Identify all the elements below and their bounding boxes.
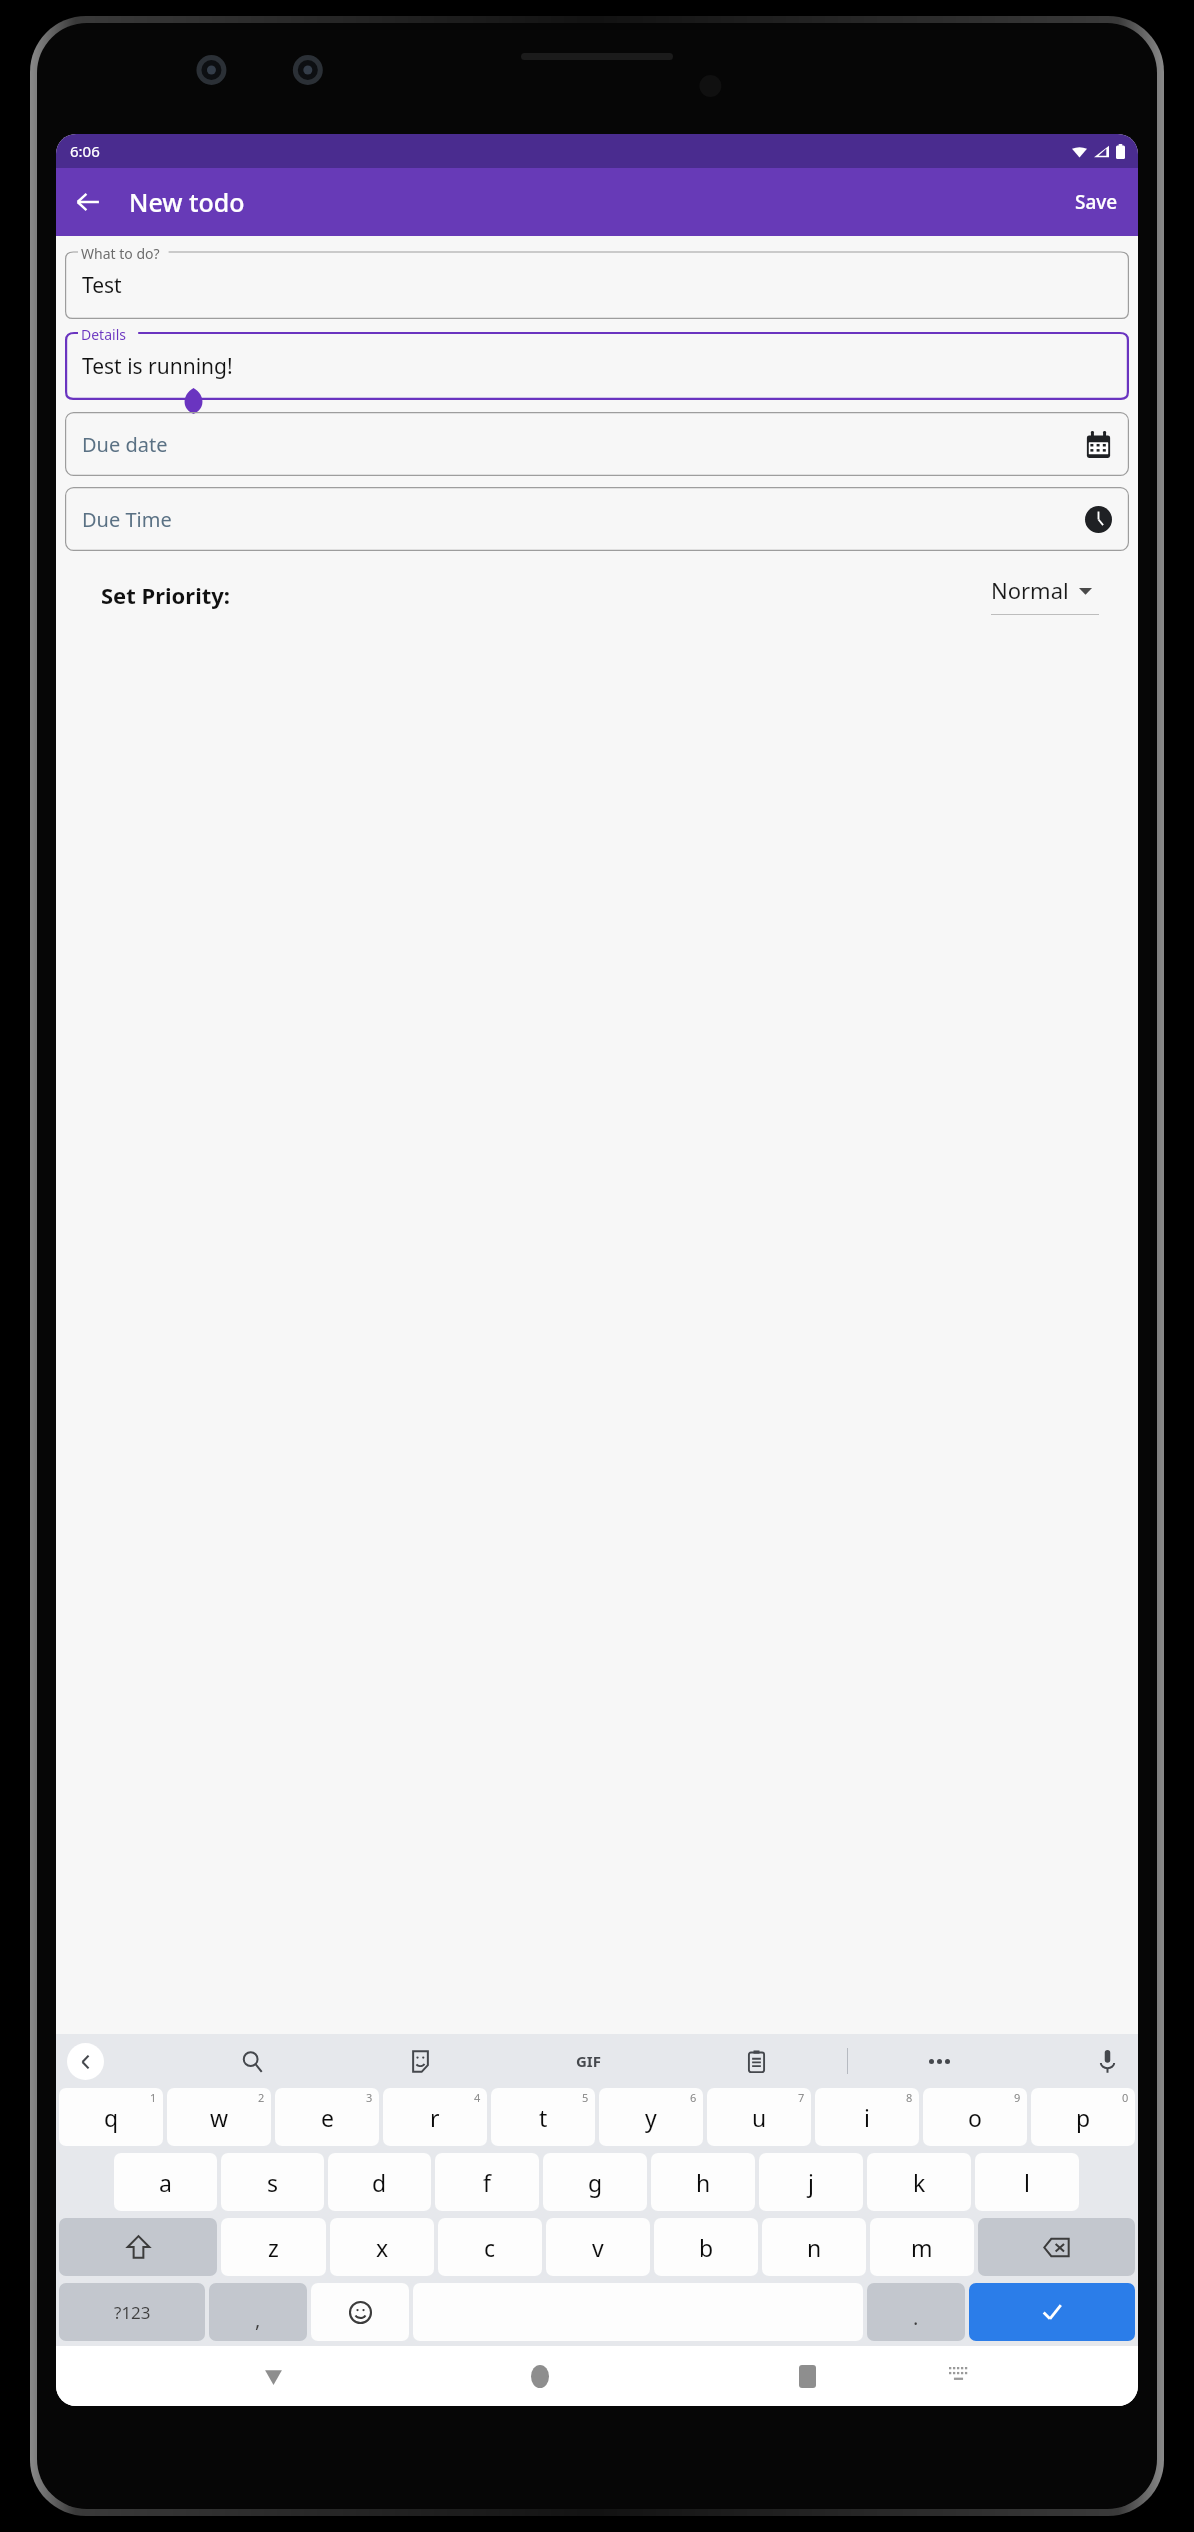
staticText: c [484, 2232, 496, 2263]
staticText: 9 [1014, 2090, 1021, 2105]
staticText: r [430, 2102, 440, 2133]
staticText: s [267, 2167, 279, 2198]
staticText: j [808, 2167, 814, 2198]
button[interactable]: Change keyboard [936, 2354, 980, 2398]
staticText: t [539, 2102, 548, 2133]
button[interactable]: Backspace [978, 2218, 1135, 2276]
staticText: u [752, 2102, 767, 2133]
staticText: What to do? [81, 244, 160, 263]
staticText: . [913, 2304, 919, 2331]
staticText: a [159, 2167, 172, 2198]
staticText: Normal [991, 575, 1069, 605]
staticText: g [588, 2167, 603, 2198]
button[interactable]: More options [919, 2041, 959, 2081]
button[interactable]: b [654, 2218, 758, 2276]
button[interactable]: Recent apps [783, 2352, 831, 2400]
staticText: q [104, 2102, 119, 2133]
button[interactable]: Back [249, 2352, 297, 2400]
button[interactable]: s [221, 2153, 324, 2211]
staticText: d [372, 2167, 387, 2198]
staticText: Due Time [82, 506, 172, 533]
button[interactable]: l [975, 2153, 1079, 2211]
button[interactable]: Voice input [1087, 2041, 1127, 2081]
button[interactable]: Due Time [65, 487, 1129, 551]
button[interactable]: g [543, 2153, 647, 2211]
button[interactable]: y [599, 2088, 703, 2146]
button[interactable]: c [438, 2218, 542, 2276]
staticText: Test is running! [82, 352, 233, 381]
button[interactable]: Home [516, 2352, 564, 2400]
button[interactable]: x [330, 2218, 434, 2276]
staticText: v [592, 2232, 604, 2263]
staticText: 6:06 [70, 141, 100, 161]
button[interactable]: v [546, 2218, 650, 2276]
button[interactable]: Pick due date [1085, 431, 1112, 458]
button[interactable]: Symbols [59, 2283, 205, 2341]
button[interactable]: What to do? [65, 243, 1129, 319]
button[interactable]: Due date [65, 412, 1129, 476]
staticText: n [807, 2232, 822, 2263]
staticText: 0 [1122, 2090, 1129, 2105]
button[interactable]: q [59, 2088, 163, 2146]
staticText: 2 [258, 2090, 265, 2105]
staticText: o [968, 2102, 982, 2133]
staticText: y [645, 2102, 657, 2133]
staticText: e [321, 2102, 334, 2133]
button[interactable]: u [707, 2088, 811, 2146]
button[interactable]: d [328, 2153, 431, 2211]
staticText: p [1076, 2102, 1091, 2133]
staticText: 4 [474, 2090, 481, 2105]
button[interactable]: Shift [59, 2218, 217, 2276]
button[interactable]: k [867, 2153, 971, 2211]
button[interactable]: e [275, 2088, 379, 2146]
button[interactable]: Period [867, 2283, 965, 2341]
button[interactable]: a [114, 2153, 217, 2211]
staticText: , [255, 2306, 261, 2333]
button[interactable]: z [221, 2218, 326, 2276]
button[interactable]: GIF [568, 2041, 608, 2081]
staticText: 6 [690, 2090, 697, 2105]
staticText: l [1024, 2167, 1030, 2198]
staticText: w [210, 2102, 229, 2133]
button[interactable]: m [870, 2218, 974, 2276]
staticText: 8 [906, 2090, 913, 2105]
button[interactable]: Comma [209, 2283, 307, 2341]
button[interactable]: f [435, 2153, 539, 2211]
staticText: New todo [129, 185, 245, 219]
button[interactable]: Expand toolbar [67, 2043, 104, 2080]
button[interactable]: t [491, 2088, 595, 2146]
staticText: 1 [150, 2090, 157, 2105]
button[interactable]: Clipboard [736, 2041, 776, 2081]
button[interactable]: h [651, 2153, 755, 2211]
button[interactable]: Navigate up [64, 178, 112, 226]
staticText: 5 [582, 2090, 589, 2105]
button[interactable]: Emoji [311, 2283, 409, 2341]
staticText: Save [1075, 189, 1118, 215]
button[interactable]: Details [65, 324, 1129, 400]
button[interactable]: Save [1061, 177, 1132, 227]
button[interactable]: o [923, 2088, 1027, 2146]
button[interactable]: Pick due time [1085, 506, 1112, 533]
button[interactable]: p [1031, 2088, 1135, 2146]
staticText: x [376, 2232, 389, 2263]
button[interactable]: Done [969, 2283, 1135, 2341]
staticText: f [483, 2167, 491, 2198]
staticText: Test [82, 271, 122, 300]
button[interactable]: Search [232, 2041, 272, 2081]
staticText: Due date [82, 431, 168, 458]
staticText: m [911, 2232, 933, 2263]
staticText: h [696, 2167, 711, 2198]
button[interactable]: r [383, 2088, 487, 2146]
staticText: k [913, 2167, 926, 2198]
button[interactable]: j [759, 2153, 863, 2211]
staticText: 7 [798, 2090, 805, 2105]
button[interactable]: i [815, 2088, 919, 2146]
button[interactable]: Stickers [400, 2041, 440, 2081]
staticText: b [699, 2232, 714, 2263]
staticText: GIF [576, 2051, 601, 2071]
button[interactable]: n [762, 2218, 866, 2276]
button[interactable]: Normal [991, 575, 1099, 615]
staticText: Set Priority: [101, 580, 231, 610]
button[interactable]: w [167, 2088, 271, 2146]
